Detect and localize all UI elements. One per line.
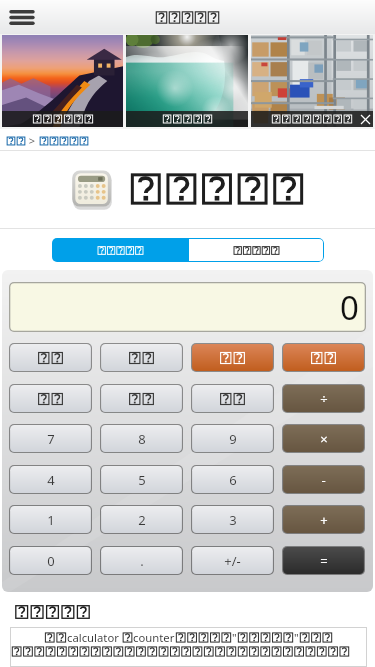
button[interactable] — [100, 384, 183, 413]
button[interactable] — [100, 343, 183, 372]
button[interactable] — [282, 343, 365, 372]
staticText: - — [321, 471, 326, 489]
staticText: calculator — [67, 630, 122, 645]
staticText: = — [320, 552, 328, 570]
button[interactable]: Close — [357, 111, 373, 127]
staticText: 7 — [47, 430, 55, 448]
staticText: 2 — [138, 511, 146, 529]
button[interactable]: 8 — [100, 424, 183, 453]
button[interactable] — [191, 384, 274, 413]
button[interactable]: ÷ — [282, 384, 365, 413]
button[interactable]: 0 — [9, 546, 92, 575]
staticText: ÷ — [320, 390, 328, 408]
button[interactable]: Close — [251, 35, 373, 127]
staticText: 8 — [138, 430, 146, 448]
button[interactable] — [126, 35, 248, 127]
staticText: 4 — [47, 471, 55, 489]
staticText: 5 — [138, 471, 146, 489]
staticText: +/- — [224, 552, 241, 570]
button[interactable]: 3 — [191, 505, 274, 534]
button[interactable] — [2, 35, 123, 127]
button[interactable] — [191, 343, 274, 372]
staticText: " — [294, 630, 299, 645]
staticText: 6 — [229, 471, 237, 489]
staticText: 3 — [229, 511, 237, 529]
staticText: > — [26, 133, 39, 148]
button[interactable]: +/- — [191, 546, 274, 575]
button[interactable] — [188, 238, 324, 262]
button[interactable]: = — [282, 546, 365, 575]
button[interactable]: + — [282, 505, 365, 534]
button[interactable]: 7 — [9, 424, 92, 453]
staticText: 1 — [47, 511, 55, 529]
button[interactable]: × — [282, 424, 365, 453]
staticText: " — [232, 630, 237, 645]
staticText: + — [320, 511, 328, 529]
button[interactable] — [6, 135, 26, 147]
staticText: 0 — [340, 285, 359, 330]
button[interactable]: 5 — [100, 465, 183, 494]
button[interactable] — [9, 343, 92, 372]
button[interactable] — [52, 238, 188, 262]
button[interactable]: Menu — [5, 0, 39, 34]
staticText: 0 — [47, 552, 55, 570]
button[interactable] — [9, 384, 92, 413]
button[interactable]: 1 — [9, 505, 92, 534]
button[interactable] — [39, 135, 89, 147]
button[interactable]: - — [282, 465, 365, 494]
staticText: . — [140, 552, 144, 570]
staticText: 9 — [229, 430, 237, 448]
staticText: × — [320, 430, 328, 448]
button[interactable]: . — [100, 546, 183, 575]
button[interactable]: 6 — [191, 465, 274, 494]
button[interactable]: 4 — [9, 465, 92, 494]
button[interactable]: 2 — [100, 505, 183, 534]
staticText: counter — [133, 630, 175, 645]
button[interactable]: 9 — [191, 424, 274, 453]
